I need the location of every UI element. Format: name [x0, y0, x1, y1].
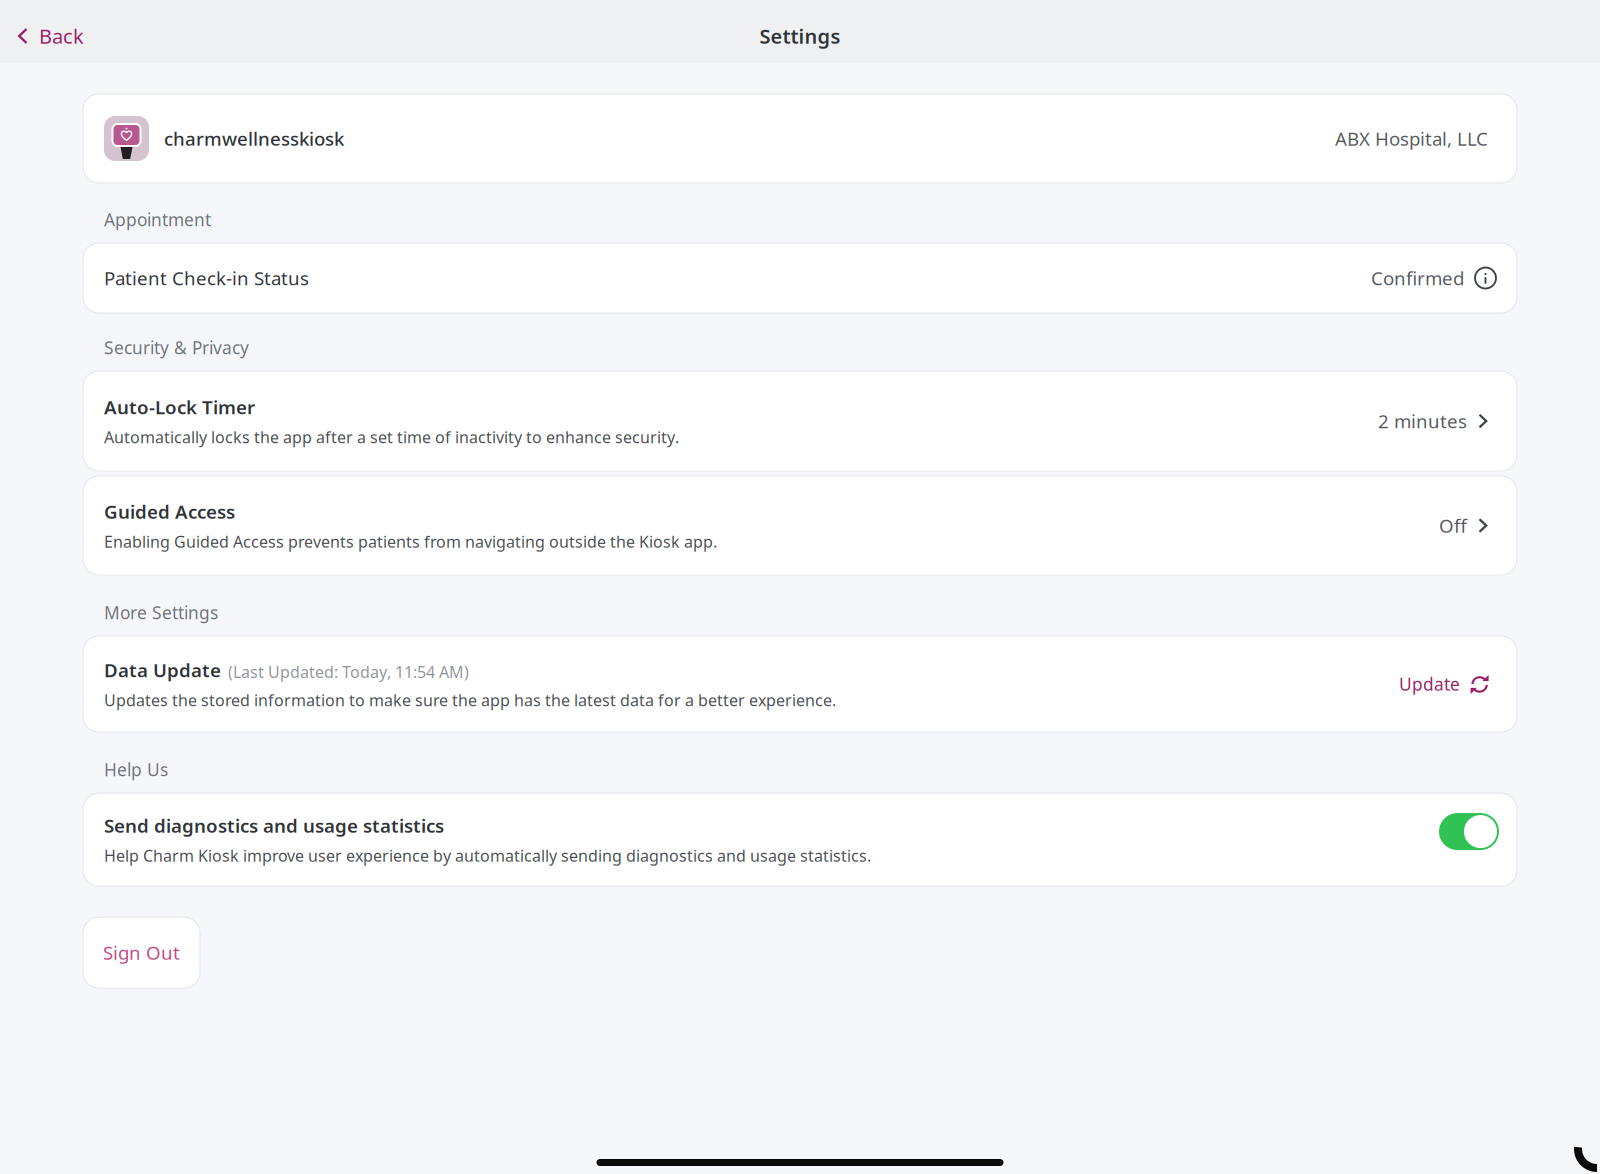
button[interactable]: Patient Check-in Status	[83, 243, 1517, 313]
staticText: Back	[39, 23, 84, 49]
staticText: 2 minutes	[1378, 409, 1467, 433]
button[interactable]: Sign Out	[83, 917, 200, 988]
staticText: (Last Updated: Today, 11:54 AM)	[228, 661, 469, 682]
staticText: More Settings	[104, 601, 218, 624]
staticText: Send diagnostics and usage statistics	[104, 813, 444, 838]
button[interactable]: Send diagnostics and usage statistics	[1439, 813, 1499, 850]
staticText: charmwellnesskiosk	[164, 126, 344, 151]
button[interactable]: Auto-Lock Timer	[83, 371, 1517, 471]
button[interactable]: Update	[1399, 666, 1496, 701]
staticText: Updates the stored information to make s…	[104, 689, 836, 710]
staticText: Update	[1399, 672, 1460, 695]
staticText: Automatically locks the app after a set …	[104, 426, 679, 447]
staticText: Help Charm Kiosk improve user experience…	[104, 845, 871, 866]
staticText: Off	[1439, 513, 1467, 538]
staticText: Enabling Guided Access prevents patients…	[104, 531, 717, 552]
button[interactable]: Guided Access	[83, 476, 1517, 575]
staticText: Auto-Lock Timer	[104, 394, 255, 419]
staticText: Sign Out	[103, 940, 180, 965]
staticText: Help Us	[104, 758, 168, 781]
staticText: Confirmed	[1371, 266, 1464, 290]
staticText: Security & Privacy	[104, 336, 249, 359]
staticText: Patient Check-in Status	[104, 266, 309, 290]
staticText: Settings	[759, 23, 840, 49]
staticText: Appointment	[104, 208, 211, 231]
staticText: ABX Hospital, LLC	[1335, 126, 1488, 151]
staticText: Data Update	[104, 657, 221, 682]
staticText: Guided Access	[104, 499, 235, 524]
button[interactable]: Back	[0, 14, 98, 58]
